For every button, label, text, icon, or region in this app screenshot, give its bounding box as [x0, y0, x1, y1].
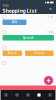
staticText: Shopping List: [2, 7, 36, 14]
staticText: AISLE: [2, 4, 8, 7]
button[interactable]: Carrots: [25, 50, 53, 56]
button[interactable]: More: [44, 90, 55, 100]
button[interactable]: Edit list: [47, 6, 53, 12]
staticText: Carrots: [34, 51, 44, 55]
staticText: Bread: [8, 51, 17, 55]
button[interactable]: 1 bag: [0, 29, 56, 35]
button[interactable]: Lists: [0, 90, 11, 100]
button[interactable]: Account: [33, 90, 44, 100]
button[interactable]: Add item: [44, 76, 53, 85]
button[interactable]: 2 qt: [0, 14, 56, 19]
staticText: Milk: [11, 20, 17, 24]
button[interactable]: Spinach: [2, 35, 54, 40]
staticText: 1 bag: [45, 30, 53, 34]
button[interactable]: Browse: [11, 90, 22, 100]
button[interactable]: [0, 45, 56, 50]
button[interactable]: Bread: [2, 50, 22, 56]
button[interactable]: Recipes: [22, 90, 33, 100]
staticText: 2 qt: [47, 15, 53, 18]
button[interactable]: Milk: [2, 19, 26, 25]
button[interactable]: [0, 60, 56, 66]
staticText: Spinach: [23, 36, 34, 39]
